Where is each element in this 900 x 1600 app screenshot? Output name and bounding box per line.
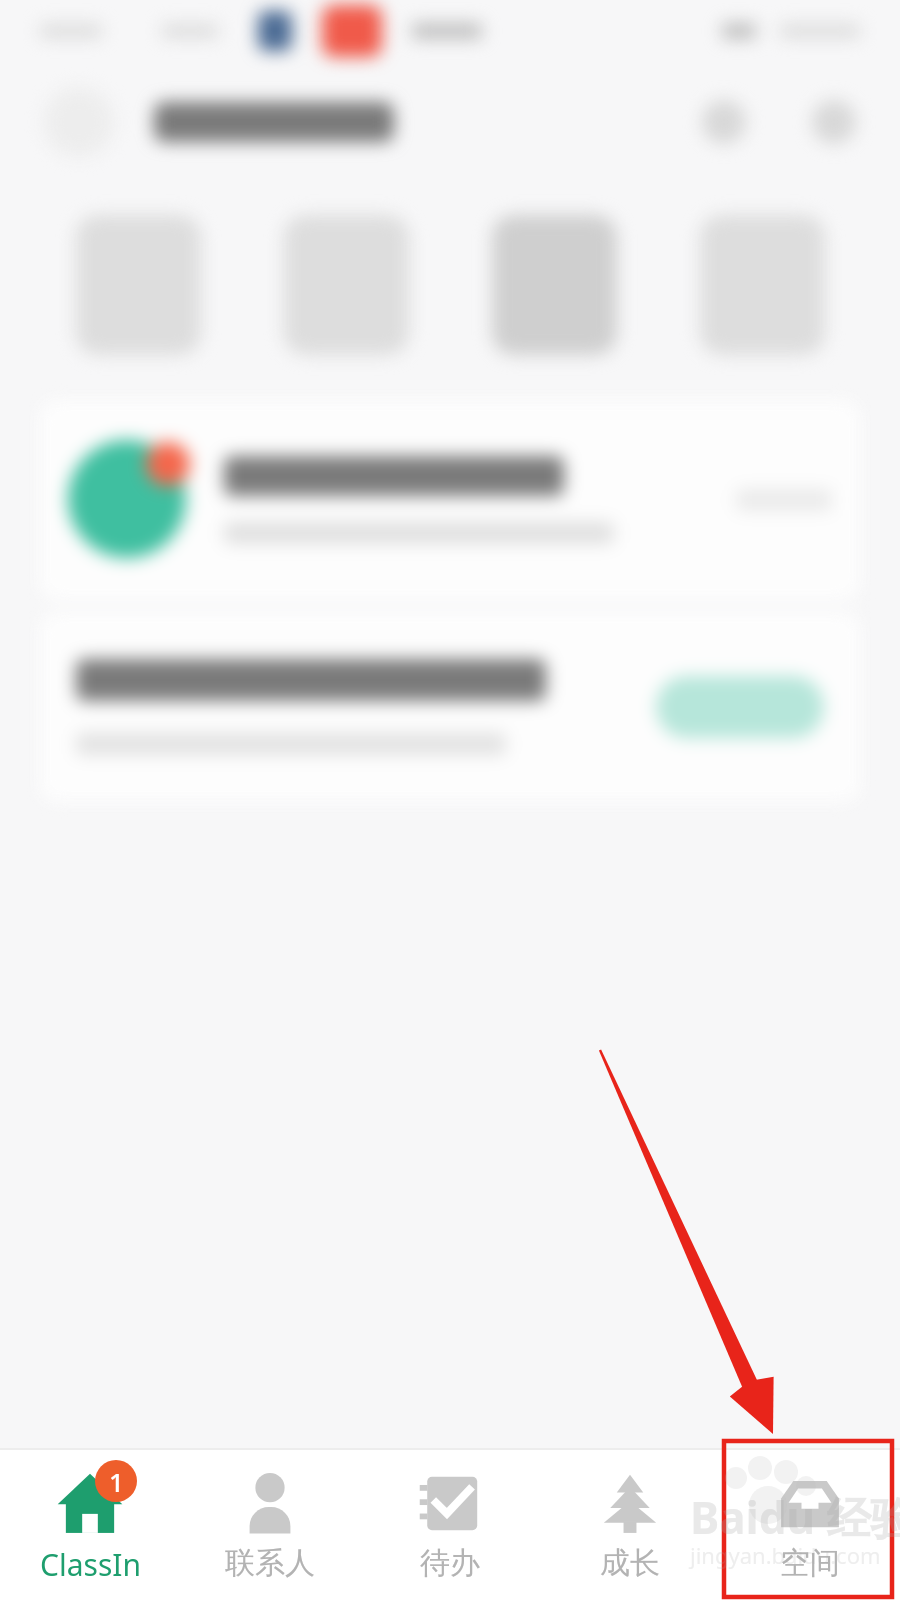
staticText: ClassIn [40, 1544, 141, 1585]
staticText: 空间 [780, 1544, 840, 1582]
staticText: 1 [109, 1464, 124, 1499]
staticText: Baidu 经验 [690, 1487, 900, 1547]
button[interactable]: 待办 [360, 1450, 540, 1582]
button[interactable]: 1 [0, 1450, 180, 1585]
button[interactable]: 联系人 [180, 1450, 360, 1582]
staticText: 成长 [600, 1544, 660, 1582]
button[interactable]: 成长 [540, 1450, 720, 1582]
staticText: 待办 [420, 1544, 480, 1582]
button[interactable]: 空间 [720, 1450, 900, 1582]
staticText: 联系人 [225, 1544, 315, 1582]
staticText: jingyan.baidu.com [690, 1540, 881, 1570]
